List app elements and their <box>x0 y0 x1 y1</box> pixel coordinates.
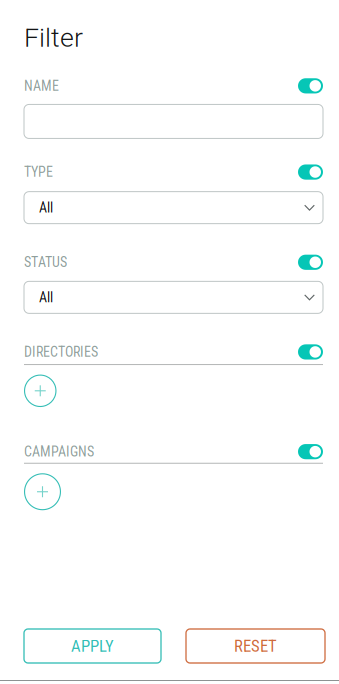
staticText: STATUS <box>24 254 67 270</box>
staticText: APPLY <box>71 636 114 656</box>
button[interactable]: APPLY <box>24 629 161 663</box>
button[interactable]: Add <box>24 473 61 510</box>
button[interactable]: All <box>24 281 323 313</box>
staticText: Filter <box>24 22 83 53</box>
button[interactable]: Add <box>24 375 56 407</box>
button[interactable]: RESET <box>186 629 325 663</box>
staticText: CAMPAIGNS <box>24 443 94 460</box>
staticText: DIRECTORIES <box>24 344 98 360</box>
button[interactable]: Toggle <box>298 164 323 180</box>
button[interactable]: Toggle <box>298 78 323 93</box>
button[interactable]: Toggle <box>298 444 323 459</box>
staticText: NAME <box>24 78 59 94</box>
button[interactable]: Toggle <box>298 255 323 270</box>
staticText: All <box>39 199 53 216</box>
staticText: TYPE <box>24 164 53 180</box>
staticText: RESET <box>234 636 277 656</box>
button[interactable]: All <box>24 192 323 224</box>
button[interactable]: Toggle <box>298 344 323 360</box>
staticText: All <box>39 289 53 305</box>
